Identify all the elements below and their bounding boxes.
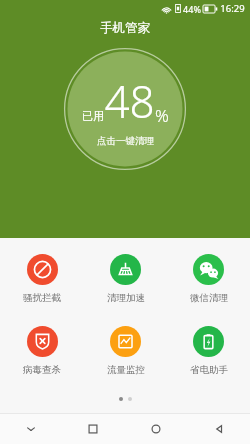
staticText: 16:29 <box>220 2 245 15</box>
button[interactable]: Home <box>124 413 187 444</box>
staticText: 省电助手 <box>190 364 228 376</box>
staticText: 手机管家 <box>100 20 150 36</box>
staticText: 点击一键清理 <box>97 135 154 147</box>
staticText: 流量监控 <box>107 364 145 376</box>
staticText: 病毒查杀 <box>23 364 61 376</box>
staticText: 骚扰拦截 <box>23 292 61 304</box>
button[interactable]: Recent apps <box>62 413 124 444</box>
button[interactable]: 流量监控 <box>84 324 167 378</box>
staticText: 微信清理 <box>190 292 228 304</box>
button[interactable]: 省电助手 <box>167 324 250 378</box>
button[interactable]: 骚扰拦截 <box>0 252 84 306</box>
staticText: 44% <box>183 3 201 15</box>
button[interactable]: 已用 <box>63 47 187 171</box>
staticText: 48 <box>104 71 155 131</box>
button[interactable]: Hide keyboard <box>0 413 62 444</box>
staticText: 已用 <box>82 109 104 123</box>
button[interactable]: 清理加速 <box>84 252 167 306</box>
staticText: % <box>155 104 169 127</box>
button[interactable]: Back <box>187 413 250 444</box>
button[interactable]: 病毒查杀 <box>0 324 84 378</box>
staticText: 清理加速 <box>107 292 145 304</box>
button[interactable]: 微信清理 <box>167 252 250 306</box>
